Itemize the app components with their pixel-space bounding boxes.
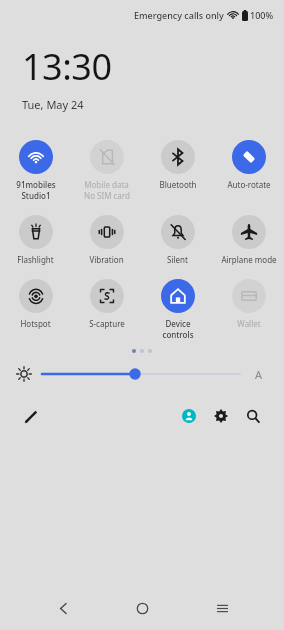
staticText: controls	[162, 329, 194, 340]
button[interactable]: Search	[242, 405, 264, 427]
staticText: Wallet	[237, 318, 261, 329]
button[interactable]: Vibration	[71, 213, 142, 267]
staticText: Emergency calls only	[134, 9, 224, 21]
button[interactable]: Mobile data	[71, 138, 142, 203]
staticText: Vibration	[89, 254, 124, 265]
button[interactable]: Back	[46, 591, 80, 625]
button[interactable]: User	[178, 405, 200, 427]
button[interactable]: 91mobiles	[0, 138, 71, 203]
staticText: Bluetooth	[159, 179, 197, 190]
button[interactable]: Device	[142, 277, 213, 342]
staticText: No SIM card	[84, 190, 130, 201]
button[interactable]: Bluetooth	[142, 138, 213, 192]
button[interactable]: Flashlight	[0, 213, 71, 267]
staticText: Hotspot	[20, 318, 51, 329]
button[interactable]: Auto brightness	[250, 365, 268, 383]
button[interactable]: Recents	[205, 591, 239, 625]
staticText: 91mobiles	[16, 179, 56, 190]
staticText: 13:30	[22, 42, 112, 91]
button[interactable]: Edit	[20, 405, 42, 427]
button[interactable]: S-capture	[71, 277, 142, 331]
button[interactable]	[42, 363, 240, 385]
staticText: S-capture	[89, 318, 125, 329]
staticText: A	[255, 367, 263, 382]
staticText: Tue, May 24	[22, 97, 84, 112]
staticText: 100%	[250, 9, 274, 21]
button[interactable]: Airplane mode	[213, 213, 284, 267]
button[interactable]: Wallet	[213, 277, 284, 331]
button[interactable]: Silent	[142, 213, 213, 267]
staticText: Studio1	[21, 190, 51, 201]
button[interactable]: Auto-rotate	[213, 138, 284, 192]
button[interactable]: Home	[125, 591, 159, 625]
staticText: Airplane mode	[221, 254, 277, 265]
button[interactable]: Hotspot	[0, 277, 71, 331]
staticText: Silent	[167, 254, 188, 265]
other: Brightness	[16, 366, 32, 382]
staticText: Auto-rotate	[227, 179, 271, 190]
button[interactable]: Settings	[210, 405, 232, 427]
staticText: Mobile data	[84, 179, 129, 190]
staticText: Flashlight	[17, 254, 54, 265]
staticText: Device	[165, 318, 191, 329]
